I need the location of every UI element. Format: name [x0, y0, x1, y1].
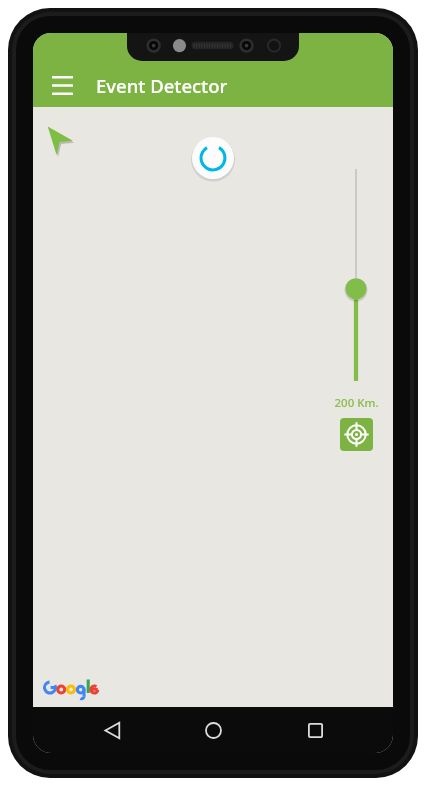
button[interactable]: Radius slider [341, 169, 371, 381]
button[interactable]: Center on my location [340, 418, 373, 451]
button[interactable]: Home [190, 707, 236, 753]
button[interactable]: Recent apps [292, 707, 338, 753]
button[interactable]: Refresh events [190, 135, 236, 181]
staticText: 200 Km. [334, 395, 379, 411]
button[interactable]: Open navigation menu [41, 64, 83, 106]
button[interactable]: Google [41, 675, 101, 699]
staticText: Event Detector [96, 73, 228, 98]
button[interactable]: Back [89, 707, 135, 753]
button[interactable]: My location heading [45, 123, 79, 157]
